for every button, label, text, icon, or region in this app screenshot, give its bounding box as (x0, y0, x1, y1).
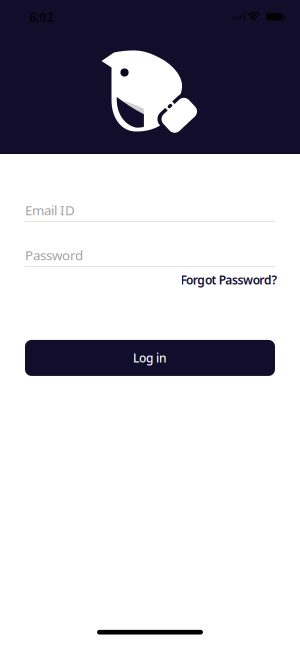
button[interactable]: Forgot Password? (178, 272, 275, 288)
staticText: Email ID (25, 201, 75, 219)
staticText: Forgot Password? (180, 272, 277, 288)
button[interactable]: Email ID (25, 204, 275, 222)
staticText: Password (25, 246, 83, 264)
button[interactable]: Password (25, 249, 275, 267)
staticText: Log in (133, 350, 167, 366)
staticText: 6:02 (29, 9, 53, 25)
button[interactable]: Log in (25, 340, 275, 376)
